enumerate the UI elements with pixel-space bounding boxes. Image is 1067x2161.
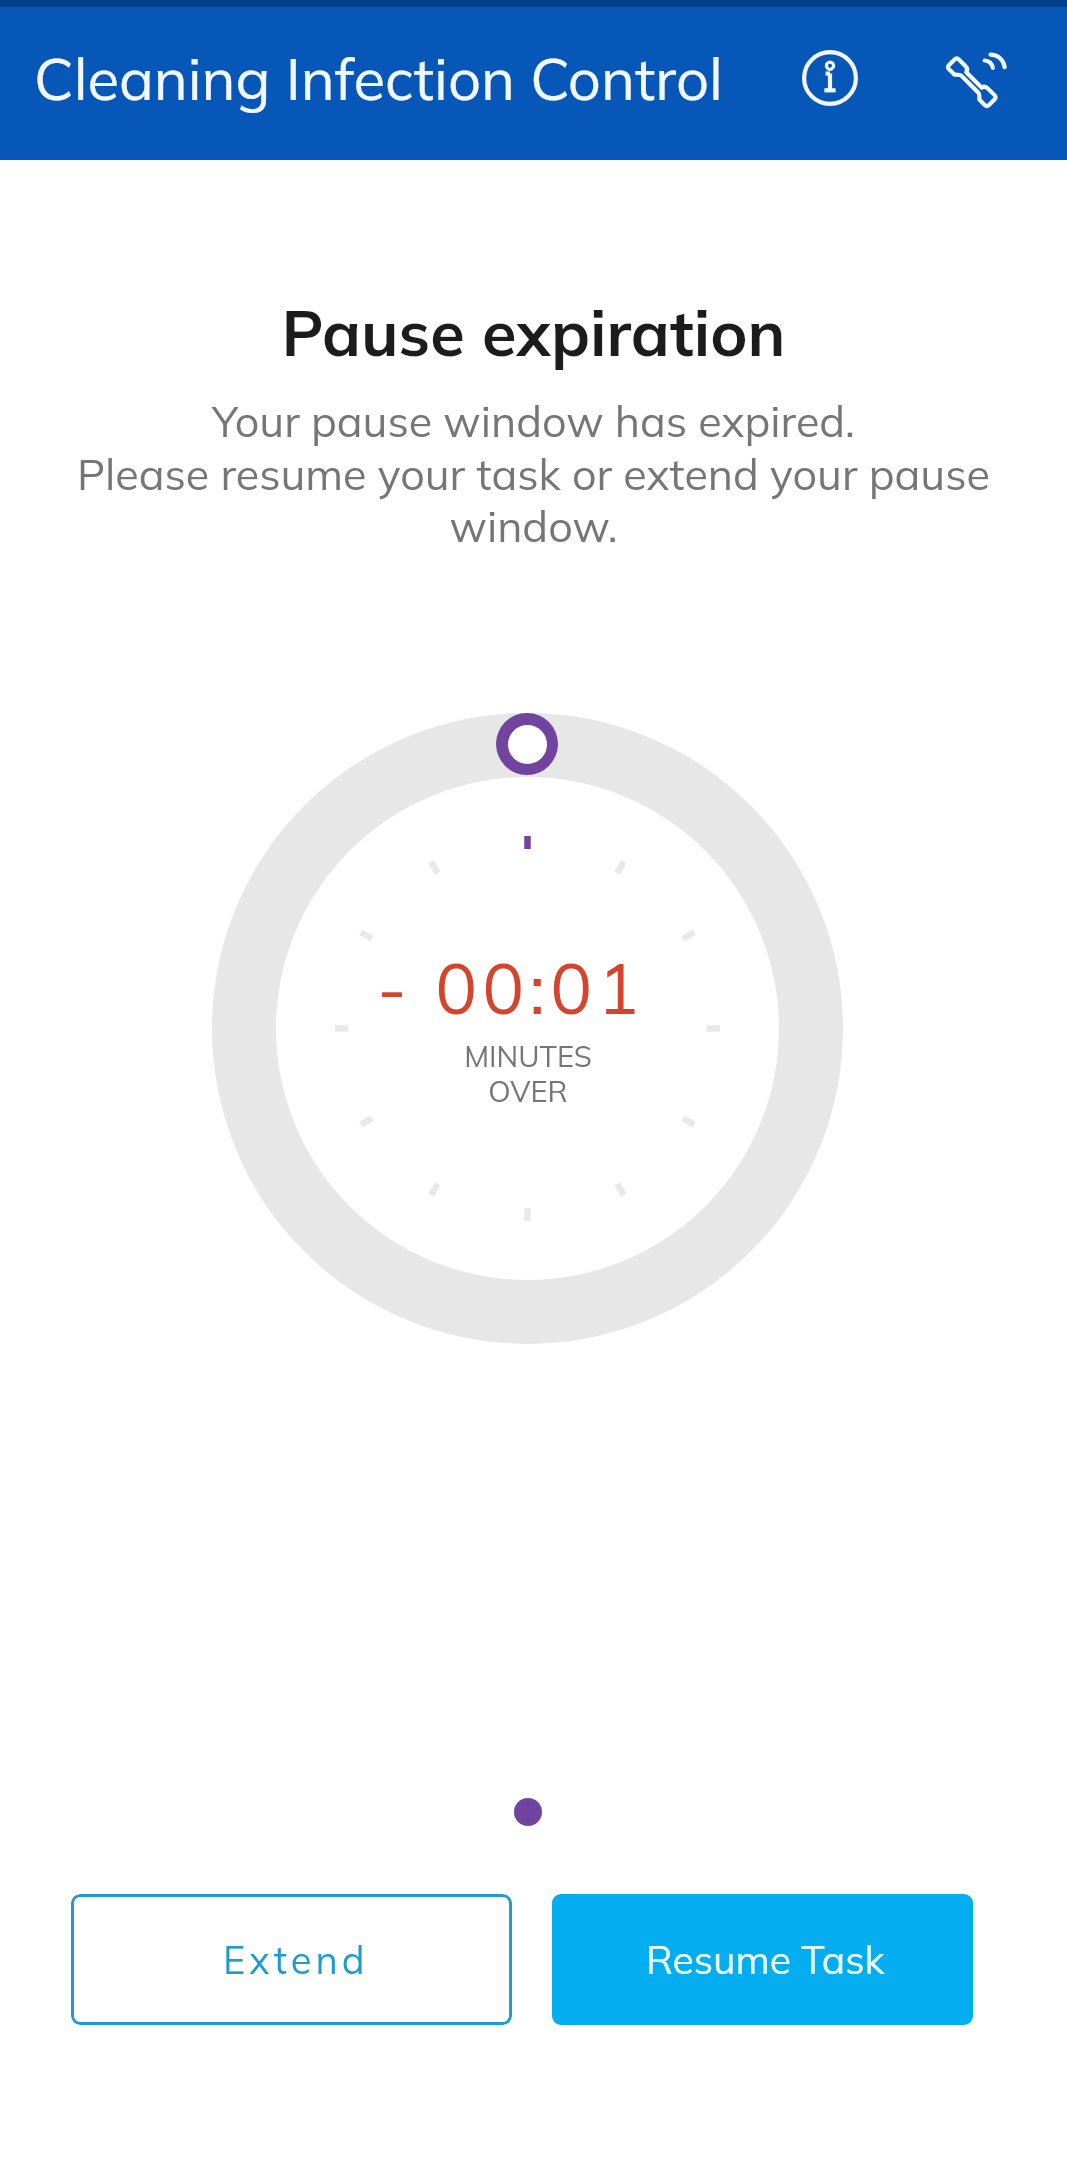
button[interactable]: Information — [775, 23, 885, 133]
staticText: Your pause window has expired. Please re… — [68, 394, 999, 552]
staticText: Extend — [223, 1936, 369, 1984]
staticText: Resume Task — [646, 1935, 885, 1984]
button[interactable]: Extend — [71, 1894, 512, 2025]
staticText: MINUTES OVER — [464, 1038, 592, 1109]
staticText: Pause expiration — [0, 293, 1067, 372]
button[interactable]: Resume Task — [552, 1894, 973, 2025]
staticText: Cleaning Infection Control — [34, 42, 723, 115]
button[interactable]: Call — [923, 21, 1033, 131]
staticText: - 00:01 — [377, 944, 645, 1032]
